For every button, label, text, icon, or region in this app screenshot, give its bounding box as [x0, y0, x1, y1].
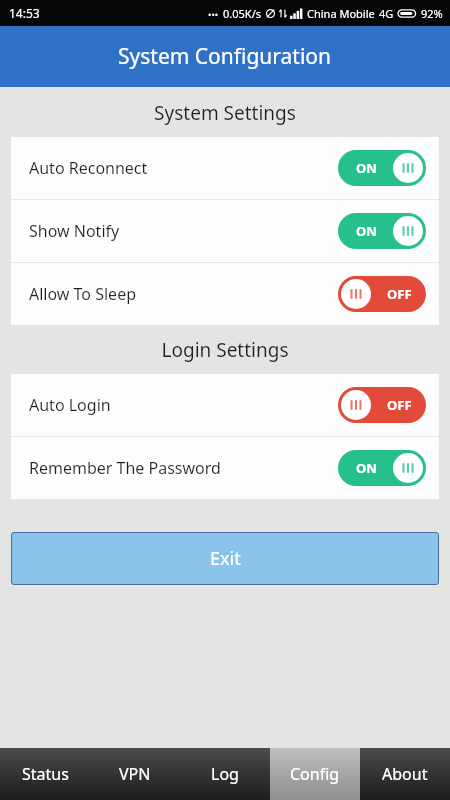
staticText: Remember The Password: [29, 457, 221, 479]
button[interactable]: About: [360, 748, 450, 800]
staticText: Show Notify: [29, 220, 120, 242]
staticText: 4G: [379, 6, 394, 21]
button[interactable]: Auto Login: [11, 374, 439, 436]
button[interactable]: Status: [0, 748, 90, 800]
button[interactable]: VPN: [90, 748, 180, 800]
staticText: Auto Login: [29, 394, 111, 416]
button[interactable]: Switch off: [338, 387, 426, 423]
button[interactable]: Switch off: [338, 276, 426, 312]
staticText: System Configuration: [118, 42, 332, 71]
button[interactable]: Switch on: [338, 213, 426, 249]
staticText: Exit: [210, 546, 241, 571]
staticText: ON: [356, 222, 377, 240]
staticText: ON: [356, 159, 377, 177]
staticText: ON: [356, 459, 377, 477]
button[interactable]: Remember The Password: [11, 437, 439, 499]
staticText: Auto Reconnect: [29, 157, 148, 179]
staticText: Allow To Sleep: [29, 283, 136, 305]
button[interactable]: Config: [270, 748, 360, 800]
button[interactable]: Switch on: [338, 150, 426, 186]
staticText: About: [382, 763, 428, 785]
button[interactable]: Show Notify: [11, 200, 439, 262]
button[interactable]: Log: [180, 748, 270, 800]
staticText: OFF: [387, 396, 412, 414]
staticText: VPN: [119, 763, 151, 785]
staticText: •••: [208, 8, 219, 20]
staticText: OFF: [387, 285, 412, 303]
staticText: Config: [290, 763, 340, 785]
button[interactable]: Auto Reconnect: [11, 137, 439, 199]
staticText: 92%: [421, 6, 443, 21]
staticText: Log: [211, 763, 239, 785]
staticText: Login Settings: [161, 337, 289, 363]
staticText: China Mobile: [307, 6, 375, 21]
staticText: 14:53: [9, 5, 40, 21]
staticText: 0.05K/s: [223, 6, 261, 21]
staticText: Status: [22, 763, 69, 785]
button[interactable]: Allow To Sleep: [11, 263, 439, 325]
button[interactable]: Exit: [11, 532, 439, 585]
button[interactable]: Switch on: [338, 450, 426, 486]
staticText: System Settings: [154, 100, 296, 126]
